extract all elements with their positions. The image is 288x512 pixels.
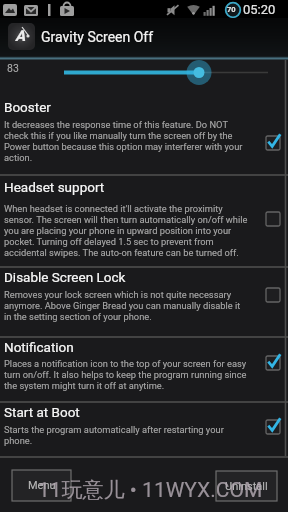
staticText: Headset support [4,179,105,195]
staticText: Places a notification icon to the top of… [4,358,247,391]
button[interactable] [266,288,280,302]
staticText: Start at Boot [4,404,80,420]
staticText: When headset is connected it'll activate… [4,203,248,258]
staticText: Disable Screen Lock [4,269,126,285]
button[interactable] [266,136,280,150]
staticText: 05:20 [243,2,276,17]
button[interactable]: 83 [0,59,288,89]
button[interactable] [0,176,288,267]
staticText: Removes your lock screen which is not qu… [4,289,241,322]
button[interactable]: Menu [12,470,71,501]
staticText: Uninstall [225,480,268,493]
staticText: Menu [28,479,56,492]
button[interactable] [266,356,280,370]
staticText: Gravity Screen Off [41,29,154,45]
staticText: 83 [7,62,19,74]
button[interactable] [0,338,288,402]
staticText: 70 [227,5,236,14]
button[interactable]: A [0,18,288,57]
staticText: 11玩意儿 • 11WYX.COM [38,477,263,503]
button[interactable] [266,212,280,226]
staticText: A [15,27,26,45]
button[interactable]: Uninstall [216,471,277,501]
staticText: It decreases the response time of this f… [4,119,243,163]
button[interactable] [0,268,288,337]
staticText: Notification [4,339,74,355]
staticText: Starts the program automatically after r… [4,424,224,446]
button[interactable] [0,92,288,175]
button[interactable] [0,403,288,457]
button[interactable] [266,420,280,434]
staticText: Booster [4,99,51,115]
